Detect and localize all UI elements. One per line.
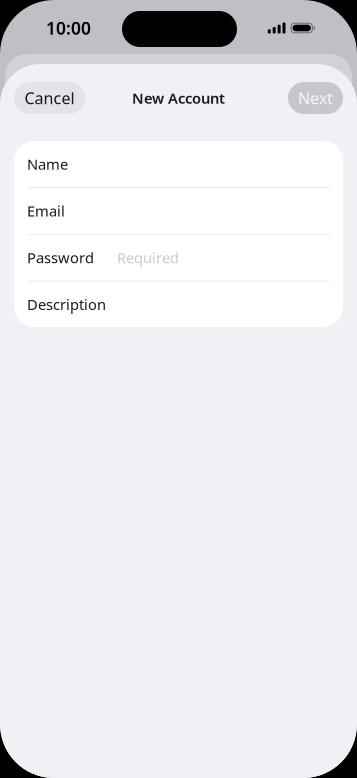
staticText: Name — [27, 154, 68, 174]
staticText: New Account — [132, 88, 225, 108]
button[interactable]: Cancel — [14, 82, 85, 114]
button[interactable]: Description — [14, 281, 343, 327]
button[interactable]: Next — [288, 82, 343, 114]
textField[interactable] — [14, 141, 343, 187]
staticText: Email — [27, 201, 65, 221]
sheet: New Account — [0, 64, 357, 778]
textField[interactable]: Required — [14, 235, 343, 281]
navigationBar: New Account — [0, 64, 357, 132]
staticText: Password — [27, 248, 94, 267]
button[interactable]: Email — [14, 188, 343, 234]
staticText: 10:00 — [46, 16, 91, 39]
textField[interactable] — [14, 188, 343, 234]
staticText: Next — [298, 87, 333, 109]
button[interactable]: Name — [14, 141, 343, 187]
staticText: Required — [117, 248, 179, 267]
textField[interactable] — [14, 281, 343, 327]
staticText: Description — [27, 294, 106, 314]
button[interactable]: Password — [14, 235, 343, 281]
staticText: Cancel — [24, 87, 74, 109]
